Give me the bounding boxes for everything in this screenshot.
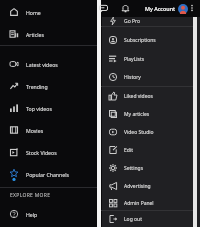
button[interactable]: Latest videos: [0, 54, 98, 74]
staticText: Advertising: [124, 183, 151, 190]
staticText: Stock Videos: [26, 149, 57, 156]
button[interactable]: Trending: [0, 76, 98, 96]
button[interactable]: Go Pro: [101, 12, 200, 30]
staticText: Video Studio: [124, 129, 154, 136]
staticText: My articles: [124, 111, 150, 118]
staticText: Go Pro: [124, 18, 140, 25]
button[interactable]: Liked videos: [101, 87, 200, 105]
staticText: Admin Panel: [124, 200, 154, 207]
button[interactable]: Admin Panel: [101, 194, 200, 212]
button[interactable]: Settings: [101, 159, 200, 177]
staticText: Subscriptions: [124, 37, 156, 44]
staticText: Trending: [26, 83, 48, 90]
button[interactable]: Stock Videos: [0, 142, 98, 162]
staticText: Liked videos: [124, 93, 153, 100]
staticText: My Account: [145, 5, 176, 12]
button[interactable]: My Account: [145, 0, 188, 17]
button[interactable]: My articles: [101, 105, 200, 123]
button[interactable]: Messages: [99, 4, 108, 13]
button[interactable]: Popular Channels: [0, 164, 98, 184]
button[interactable]: PlayLists: [101, 50, 200, 68]
button[interactable]: Log out: [101, 210, 200, 227]
button[interactable]: Top videos: [0, 98, 98, 118]
staticText: PlayLists: [124, 56, 145, 63]
button[interactable]: Video Studio: [101, 123, 200, 141]
button[interactable]: Advertising: [101, 177, 200, 195]
staticText: Popular Channels: [26, 171, 69, 178]
button[interactable]: Notifications: [121, 4, 130, 13]
staticText: Home: [26, 9, 41, 16]
staticText: Top videos: [26, 105, 52, 112]
staticText: Latest videos: [26, 61, 58, 68]
staticText: EXPLORE MORE: [10, 192, 51, 199]
button[interactable]: History: [101, 68, 200, 86]
button[interactable]: Articles: [0, 24, 98, 44]
button[interactable]: Home: [0, 2, 98, 22]
staticText: Help: [26, 211, 38, 218]
staticText: History: [124, 74, 141, 81]
button[interactable]: Subscriptions: [101, 31, 200, 49]
button[interactable]: More options: [188, 4, 196, 12]
staticText: Articles: [26, 31, 44, 38]
button[interactable]: Movies: [0, 120, 98, 140]
staticText: Edit: [124, 147, 133, 154]
staticText: Settings: [124, 165, 144, 172]
button[interactable]: Edit: [101, 141, 200, 159]
button[interactable]: Help: [0, 204, 98, 224]
staticText: Movies: [26, 127, 44, 134]
staticText: Log out: [124, 216, 142, 223]
